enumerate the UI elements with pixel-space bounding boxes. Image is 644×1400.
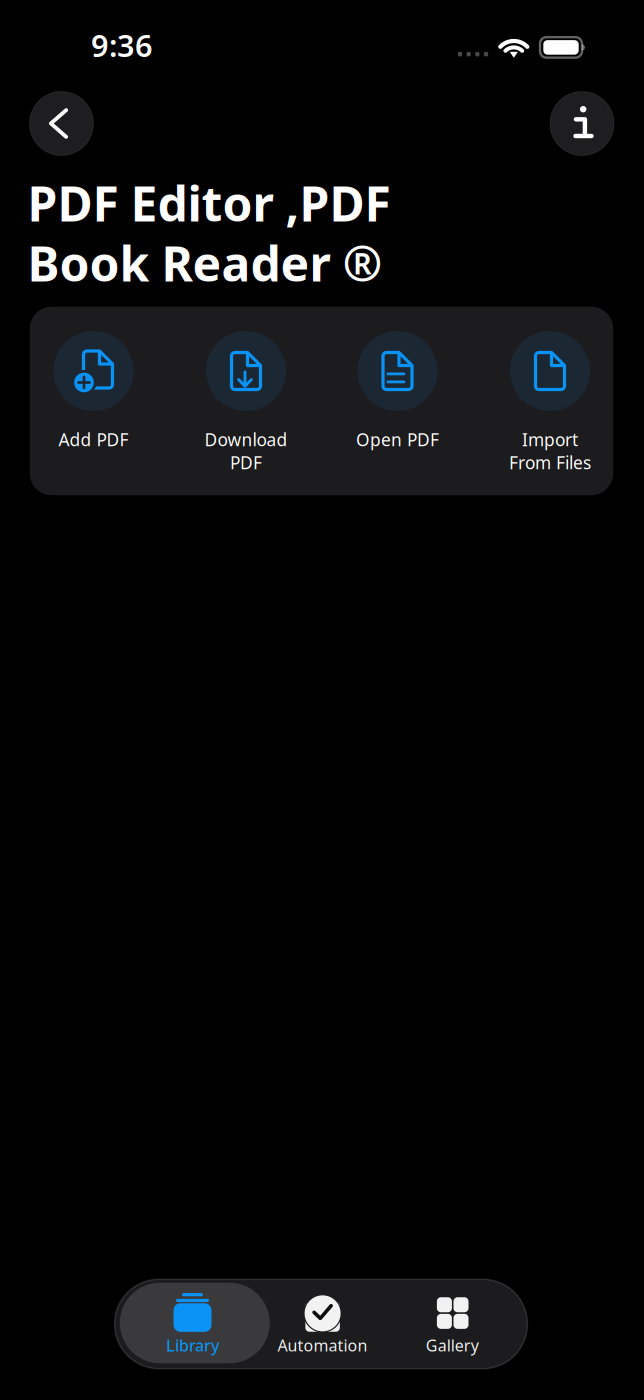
staticText: Add PDF [58, 428, 128, 451]
button[interactable]: Import From Files [480, 307, 620, 483]
button[interactable]: Download PDF [176, 307, 316, 483]
staticText: Automation [278, 1335, 368, 1356]
button[interactable]: Library [120, 1283, 270, 1363]
staticText: Gallery [426, 1335, 479, 1356]
staticText: PDF Editor ,PDF [27, 171, 390, 235]
staticText: Book Reader ® [27, 231, 382, 295]
staticText: 9:36 [91, 25, 153, 65]
staticText: From Files [509, 451, 591, 474]
staticText: Download [204, 428, 287, 451]
button[interactable]: Back [29, 91, 93, 155]
button[interactable]: Open PDF [327, 307, 467, 483]
staticText: Library [166, 1335, 219, 1356]
button[interactable]: Automation [260, 1283, 385, 1363]
button[interactable]: Gallery [402, 1283, 502, 1363]
staticText: Open PDF [356, 428, 439, 451]
button[interactable]: Add PDF [23, 307, 163, 483]
button[interactable]: Information [550, 91, 614, 155]
staticText: PDF [230, 451, 262, 474]
staticText: Import [522, 428, 578, 451]
